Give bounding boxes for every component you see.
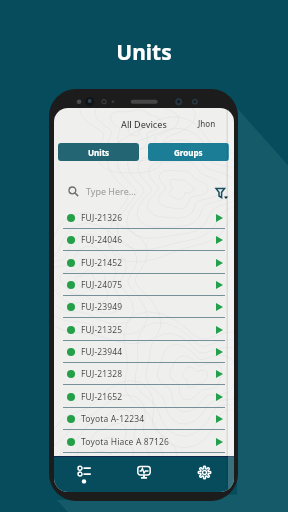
button[interactable]: FUJ-23944 xyxy=(54,341,234,363)
button[interactable]: Toyota A-12234 xyxy=(54,408,234,430)
button[interactable]: FUJ-21325 xyxy=(54,319,234,341)
button[interactable]: FUJ-21326 xyxy=(54,207,234,229)
staticText: FUJ-21452 xyxy=(81,257,123,269)
staticText: FUJ-21652 xyxy=(81,391,123,403)
staticText: Toyota Hiace A 87126 xyxy=(81,436,169,448)
button[interactable]: Settings xyxy=(174,456,234,492)
staticText: Jhon xyxy=(198,118,216,129)
staticText: FUJ-23949 xyxy=(81,301,123,313)
button[interactable]: Units xyxy=(58,143,139,161)
button[interactable]: FUJ-21652 xyxy=(54,386,234,408)
staticText: FUJ-24075 xyxy=(81,279,123,291)
staticText: FUJ-24046 xyxy=(81,234,123,246)
button[interactable]: Unit list xyxy=(54,456,114,492)
staticText: Toyota A-12234 xyxy=(81,413,145,425)
button[interactable]: Filter xyxy=(216,188,228,200)
staticText: FUJ-21325 xyxy=(81,324,123,336)
staticText: Units xyxy=(0,38,288,67)
button[interactable]: FUJ-21328 xyxy=(54,363,234,385)
button[interactable]: FUJ-23949 xyxy=(54,296,234,318)
staticText: FUJ-21328 xyxy=(81,368,123,380)
button[interactable]: Monitoring xyxy=(114,456,174,492)
staticText: Units xyxy=(88,147,110,158)
staticText: FUJ-21326 xyxy=(81,212,123,224)
button[interactable]: Groups xyxy=(148,143,229,161)
staticText: Groups xyxy=(174,147,203,158)
button[interactable]: FUJ-21452 xyxy=(54,252,234,274)
button[interactable]: FUJ-24075 xyxy=(54,274,234,296)
button[interactable]: FUJ-24046 xyxy=(54,229,234,251)
button[interactable]: Toyota Hiace A 87126 xyxy=(54,431,234,453)
staticText: Type Here... xyxy=(86,185,136,197)
staticText: FUJ-23944 xyxy=(81,346,123,358)
staticText: All Devices xyxy=(121,118,167,130)
